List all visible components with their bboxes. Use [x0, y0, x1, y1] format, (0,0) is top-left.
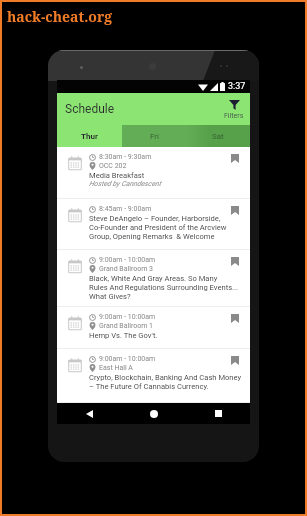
button[interactable]: Bookmark [229, 314, 241, 326]
staticText: Schedule [65, 102, 115, 116]
staticText: Hosted by Canndescent [89, 180, 161, 188]
button[interactable]: 8:30am - 9:30am [57, 147, 250, 199]
staticText: Steve DeAngelo – Founder, Harborside, [89, 214, 221, 223]
button[interactable]: 8:45am - 9:00am [57, 199, 250, 250]
staticText: Group, Opening Remarks & Welcome [89, 232, 215, 241]
button[interactable]: 9:00am - 10:00am [57, 349, 250, 403]
staticText: Media Breakfast [89, 171, 145, 180]
staticText: 9:00am - 10:00am [99, 313, 156, 321]
button[interactable]: 9:00am - 10:00am [57, 307, 250, 349]
staticText: hack-cheat.org [7, 7, 113, 26]
staticText: Co-Founder and President of the Arcview [89, 223, 227, 232]
button[interactable]: Bookmark [229, 154, 241, 166]
staticText: Black, White And Gray Areas. So Many [89, 274, 218, 283]
staticText: 8:30am - 9:30am [99, 153, 152, 161]
button[interactable]: Filters [218, 93, 250, 125]
button[interactable]: Home [122, 403, 186, 424]
staticText: Grand Ballroom 3 [99, 265, 154, 273]
staticText: Crypto, Blockchain, Banking And Cash Mon… [89, 373, 242, 382]
staticText: Filters [224, 112, 244, 120]
staticText: 8:45am - 9:00am [99, 205, 152, 213]
staticText: Thur [81, 132, 98, 141]
button[interactable]: Back [57, 403, 122, 424]
staticText: OCC 202 [99, 162, 127, 170]
button[interactable]: Fri [122, 125, 186, 147]
staticText: 3:37 [228, 81, 246, 92]
staticText: Sat [212, 132, 224, 141]
staticText: 9:00am - 10:00am [99, 256, 156, 264]
staticText: What Gives? [89, 292, 131, 301]
staticText: – The Future Of Cannabis Currency. [89, 382, 209, 391]
staticText: Rules And Regulations Surrounding Events… [89, 283, 239, 292]
button[interactable]: Bookmark [229, 257, 241, 269]
staticText: Fri [150, 132, 159, 141]
button[interactable]: Bookmark [229, 206, 241, 218]
button[interactable]: Recents [186, 403, 250, 424]
staticText: 9:00am - 10:00am [99, 355, 156, 363]
staticText: East Hall A [99, 364, 133, 372]
button[interactable]: Thur [57, 125, 122, 147]
button[interactable]: Sat [186, 125, 250, 147]
staticText: Grand Ballroom 1 [99, 322, 154, 330]
staticText: Hemp Vs. The Gov't. [89, 331, 158, 340]
button[interactable]: 9:00am - 10:00am [57, 250, 250, 307]
button[interactable]: Bookmark [229, 356, 241, 368]
